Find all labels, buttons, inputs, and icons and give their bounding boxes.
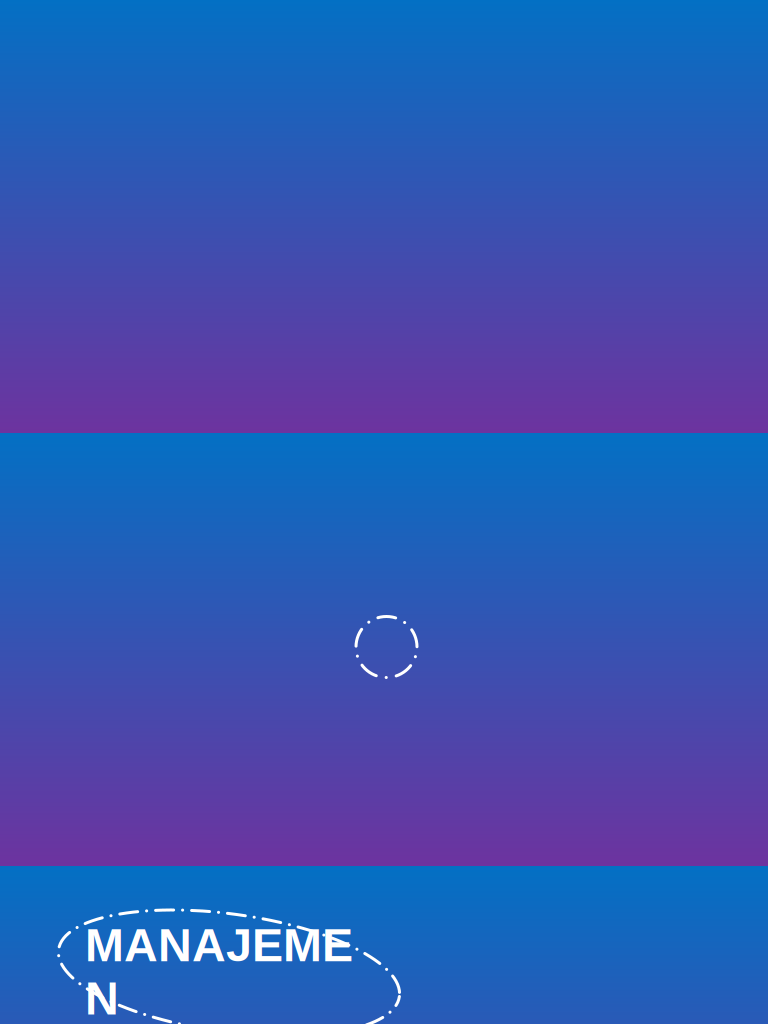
staticText: MANAJEME​N	[85, 919, 353, 1024]
